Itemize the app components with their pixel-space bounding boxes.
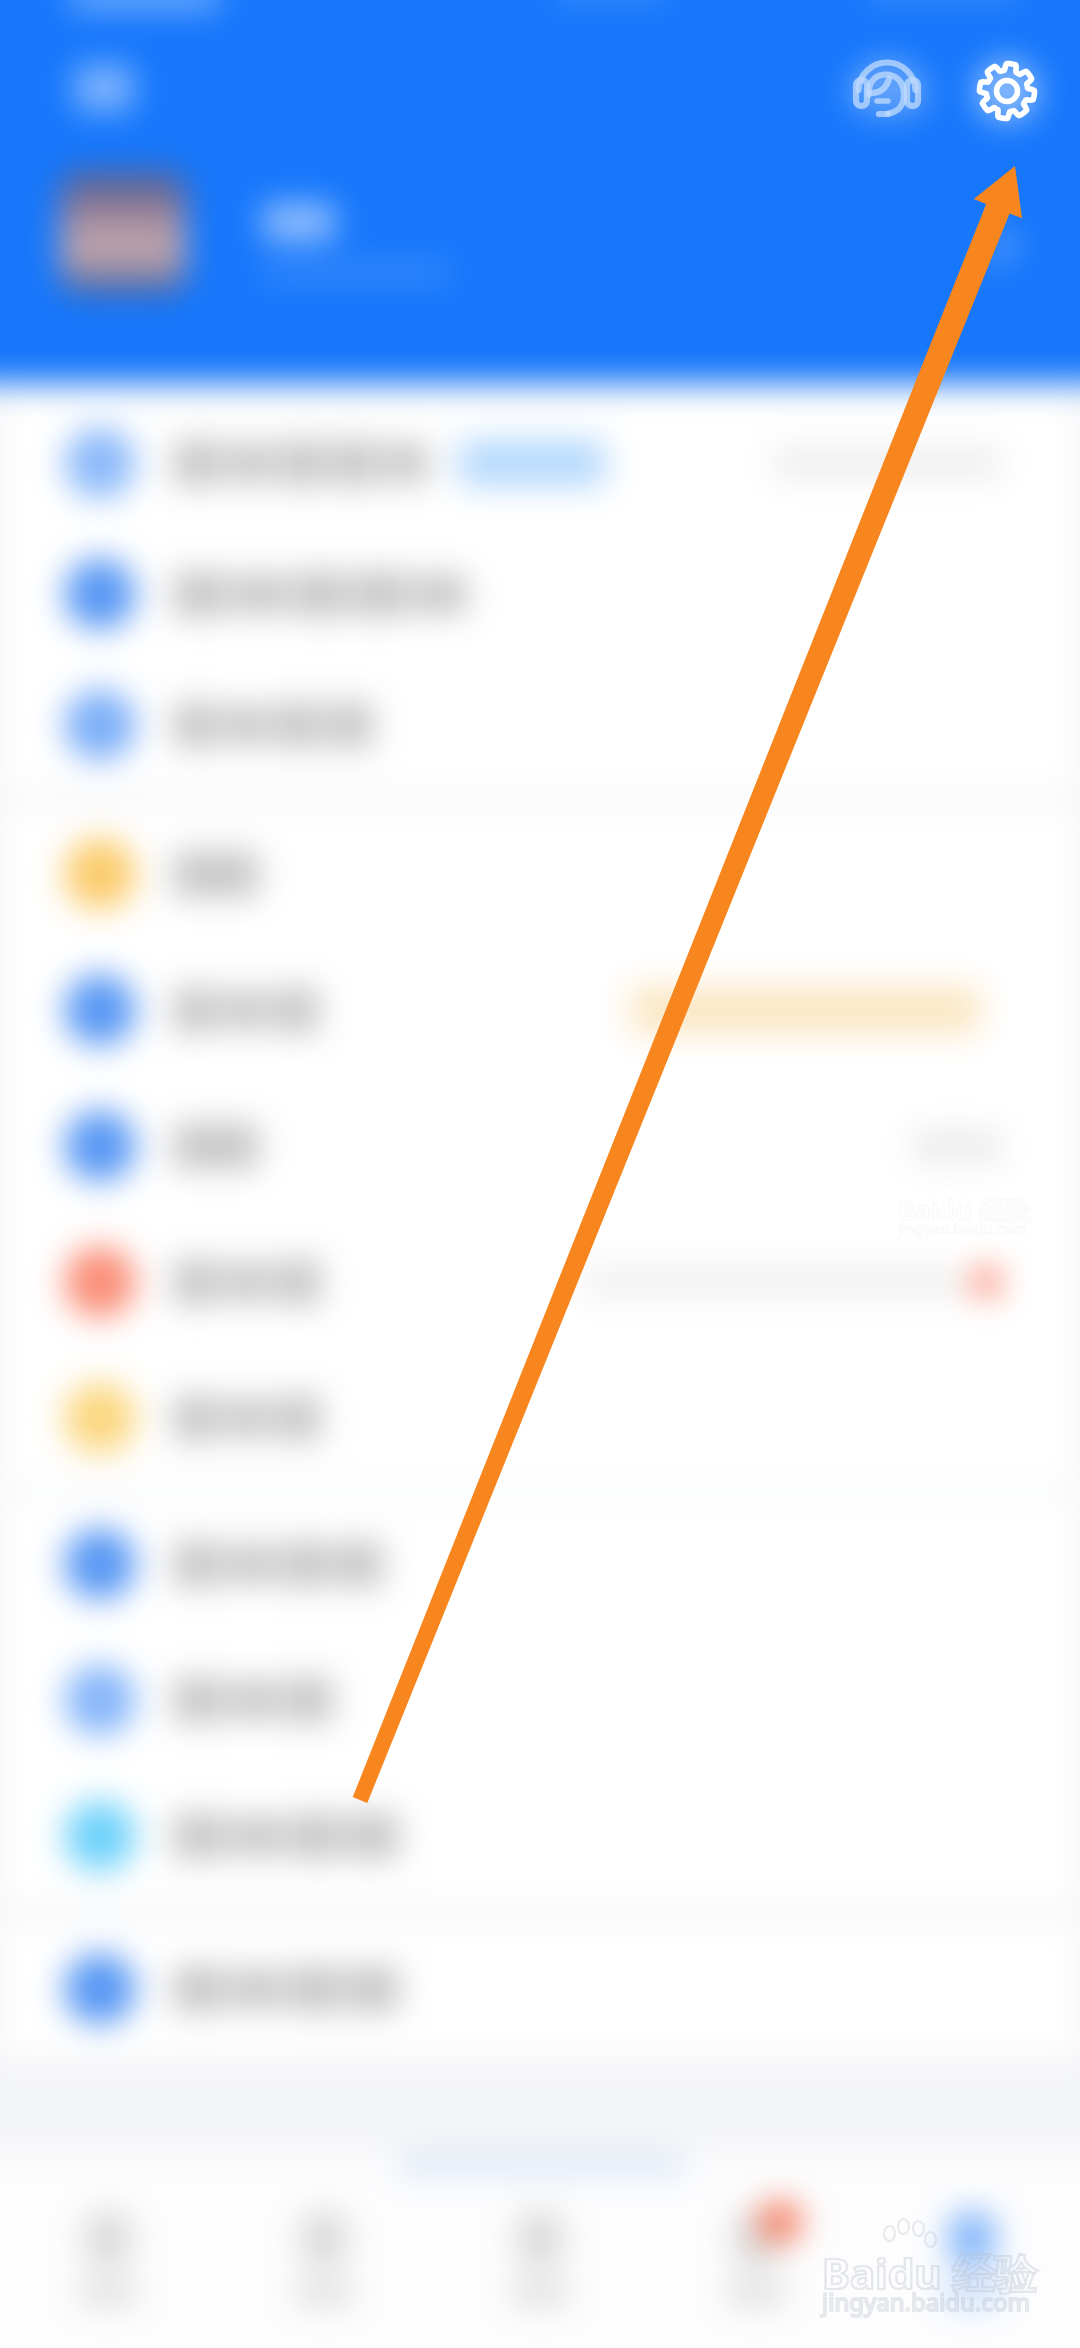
button[interactable]: Profile [0,150,1080,340]
staticText: Baidu 经验 [822,2244,1037,2301]
button[interactable] [0,806,1080,942]
button[interactable]: Profile tab [864,2178,1080,2348]
button[interactable] [0,659,1080,791]
button[interactable] [0,942,1080,1078]
button[interactable]: Tab [432,2178,648,2348]
staticText: jingyan.baidu.com [822,2285,1030,2318]
button[interactable]: Settings [948,32,1066,150]
button[interactable] [0,528,1080,659]
button[interactable]: Tab [216,2178,432,2348]
button[interactable] [0,1768,1080,1904]
button[interactable]: Tab [0,2178,216,2348]
button[interactable]: Tab [648,2178,864,2348]
button[interactable] [0,1496,1080,1632]
button[interactable]: Customer service [828,32,946,150]
button[interactable] [0,1632,1080,1768]
button[interactable] [0,1921,1080,2057]
button[interactable] [0,397,1080,528]
button[interactable] [0,1214,1080,1350]
button[interactable] [0,1078,1080,1214]
button[interactable] [0,1350,1080,1486]
